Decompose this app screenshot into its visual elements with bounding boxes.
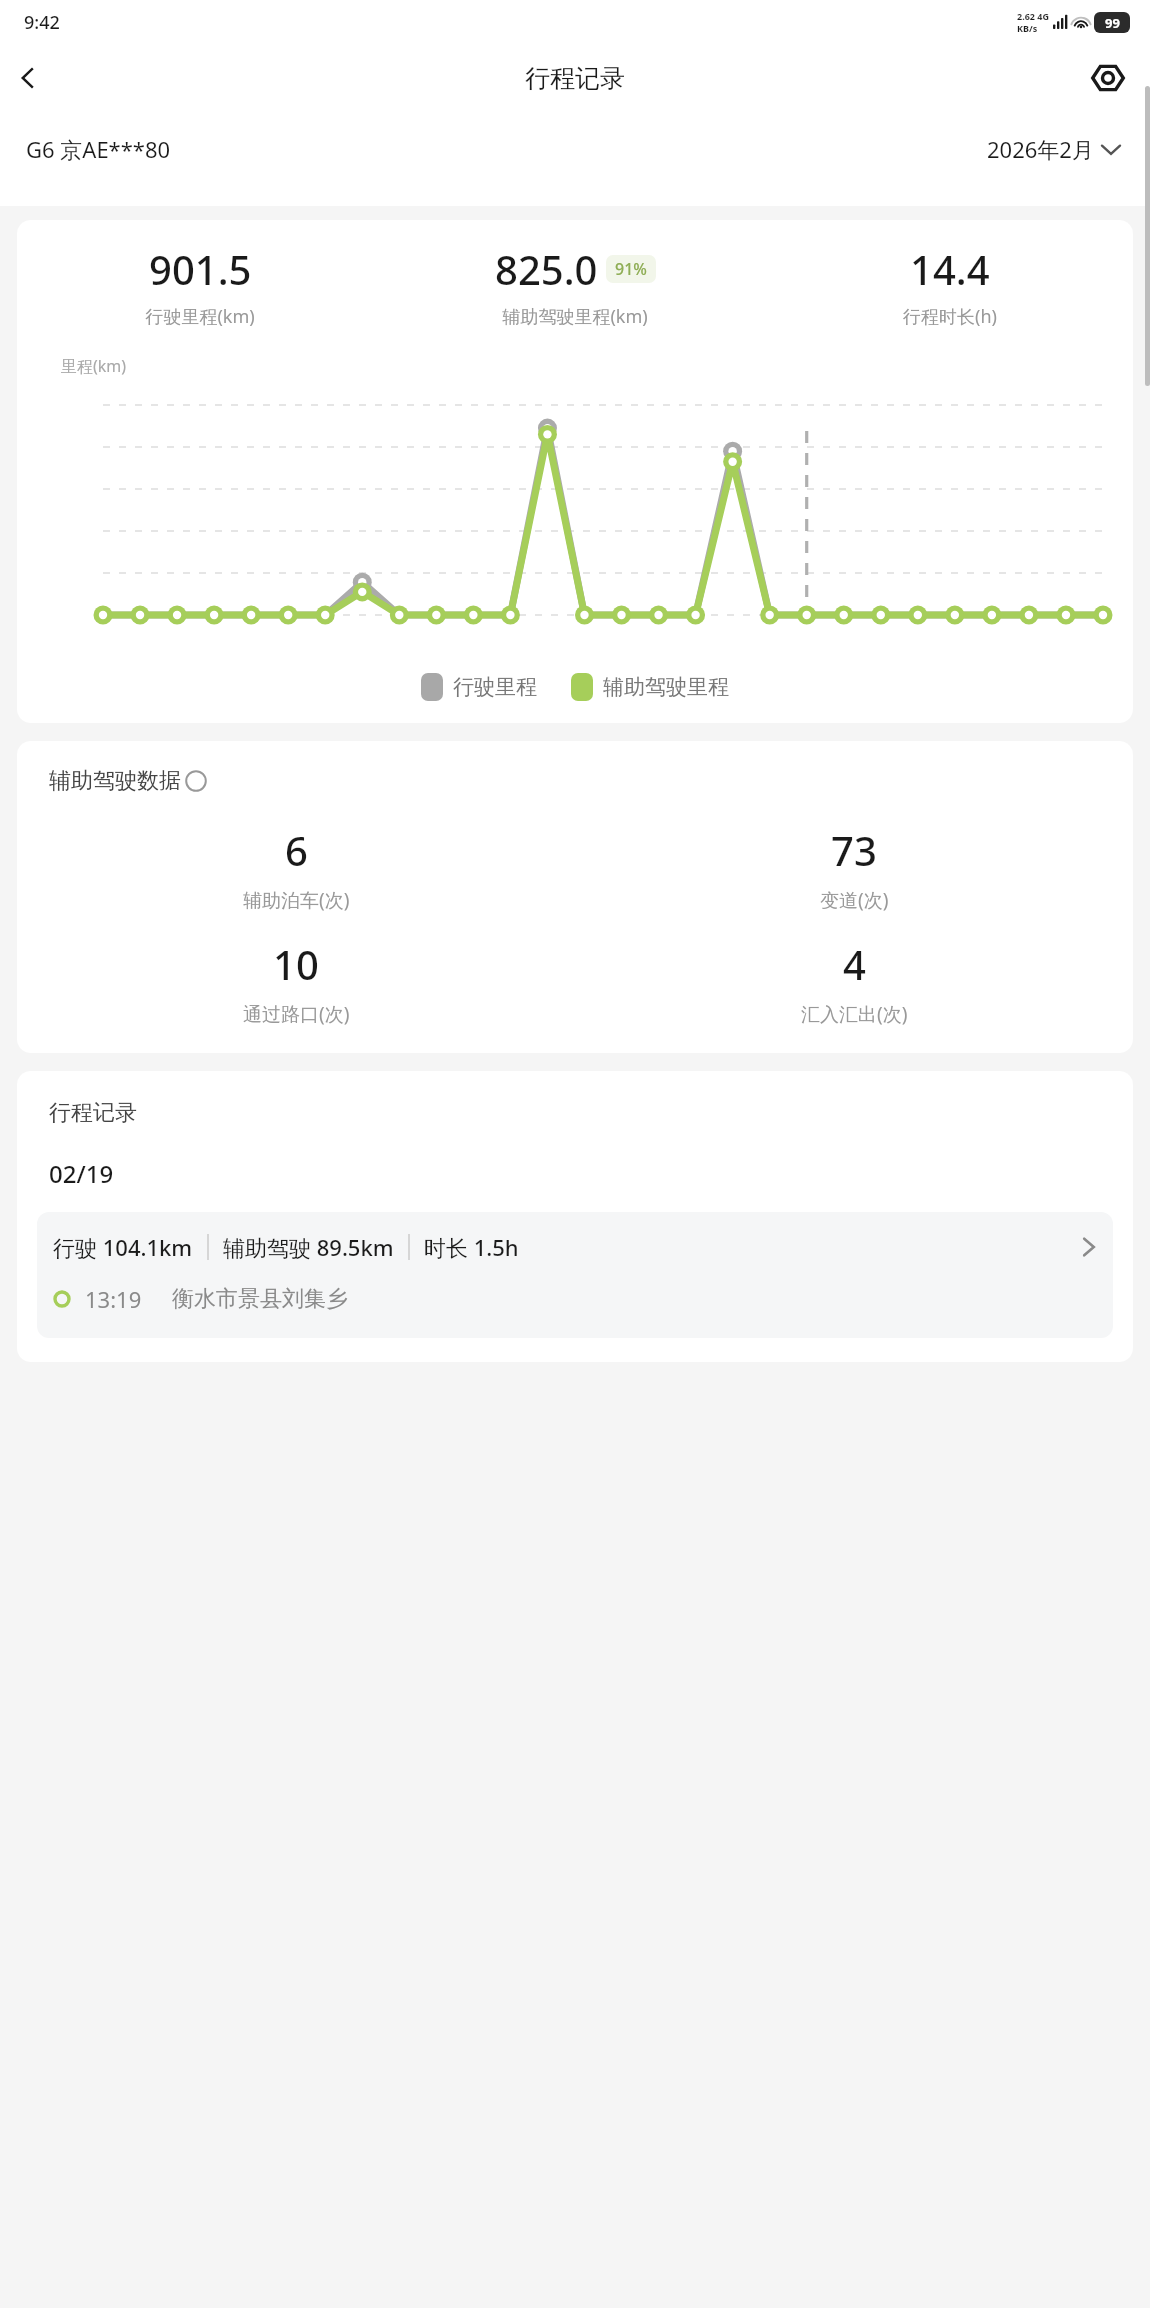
button[interactable]: 返回 [0, 50, 56, 106]
button[interactable]: 行驶 104.1km [37, 1212, 1113, 1338]
staticText: 2026年2月 [987, 134, 1094, 164]
staticText: 变道(次) [820, 887, 889, 913]
staticText: 时长 1.5h [424, 1232, 519, 1262]
staticText: 901.5 [149, 242, 252, 296]
staticText: 行驶里程(km) [145, 304, 255, 329]
staticText: 行程时长(h) [903, 304, 997, 329]
staticText: 14.4 [910, 242, 990, 296]
staticText: 6 [285, 823, 308, 877]
staticText: 73 [831, 823, 877, 877]
staticText: 825.0 [495, 242, 598, 296]
staticText: 10 [273, 937, 319, 991]
staticText: 13:19 [85, 1284, 142, 1314]
staticText: 通过路口(次) [243, 1001, 350, 1027]
staticText: 99 [1105, 14, 1120, 32]
staticText: KB/s [1017, 22, 1038, 34]
staticText: 辅助驾驶数据 [49, 767, 181, 795]
staticText: 91% [615, 258, 647, 280]
staticText: 辅助驾驶 89.5km [223, 1232, 394, 1262]
staticText: 辅助驾驶里程(km) [502, 304, 648, 329]
staticText: 里程(km) [61, 355, 127, 377]
staticText: 4 [843, 937, 866, 991]
staticText: 行程记录 [525, 63, 625, 94]
staticText: G6 京AE***80 [26, 134, 171, 164]
button[interactable]: 辅助驾驶数据 [49, 767, 207, 795]
staticText: 行驶 104.1km [53, 1232, 193, 1262]
button[interactable]: 2026年2月 [983, 130, 1124, 168]
staticText: 02/19 [49, 1157, 114, 1190]
staticText: 9:42 [24, 10, 60, 35]
staticText: 辅助驾驶里程 [603, 674, 729, 700]
staticText: 汇入汇出(次) [801, 1001, 908, 1027]
staticText: 2.62 4G [1017, 10, 1049, 22]
staticText: 行驶里程 [453, 674, 537, 700]
button[interactable]: 设置 [1082, 52, 1134, 104]
staticText: 行程记录 [49, 1099, 137, 1127]
other: 说明 [185, 770, 207, 792]
staticText: 辅助泊车(次) [243, 887, 350, 913]
staticText: 衡水市景县刘集乡 [172, 1285, 348, 1313]
